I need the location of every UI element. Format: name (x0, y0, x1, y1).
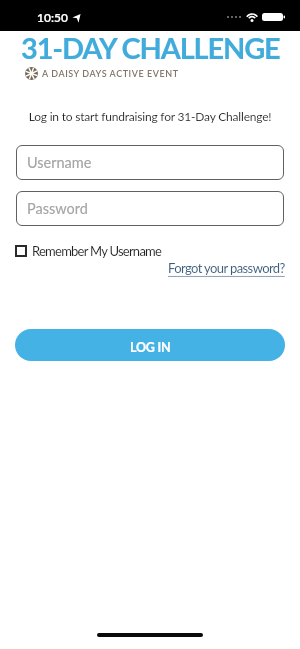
staticText: Password (27, 200, 88, 217)
button[interactable]: LOG IN (15, 329, 285, 361)
staticText: Remember My Username (32, 243, 162, 259)
button[interactable]: Password (16, 191, 284, 226)
button[interactable]: Forgot your password? (168, 260, 285, 276)
staticText: Log in to start fundraising for 31-Day C… (0, 109, 300, 123)
button[interactable]: Remember My Username (15, 243, 162, 259)
staticText: LOG IN (130, 340, 171, 355)
staticText: 10:50 (37, 10, 68, 24)
staticText: Username (27, 154, 92, 171)
staticText: 31-DAY CHALLENGE (21, 30, 280, 65)
button[interactable]: Username (16, 145, 284, 180)
staticText: A DAISY DAYS ACTIVE EVENT (42, 68, 179, 79)
